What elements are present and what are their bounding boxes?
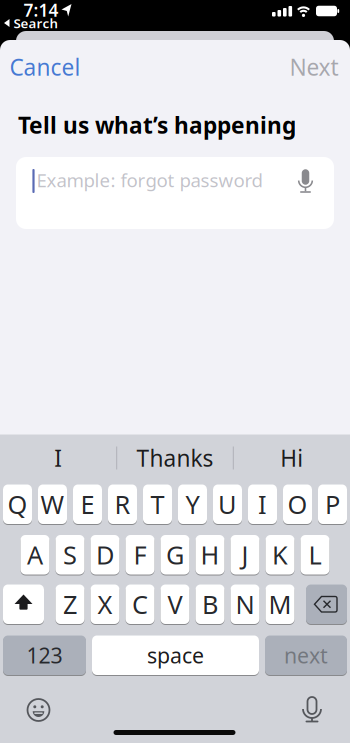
staticText: B xyxy=(202,587,218,621)
staticText: I xyxy=(54,443,62,473)
button[interactable]: Thanks xyxy=(120,438,230,478)
button[interactable]: F xyxy=(125,534,154,575)
staticText: D xyxy=(96,538,114,571)
staticText: O xyxy=(287,487,307,521)
staticText: Search xyxy=(13,14,58,32)
button[interactable]: Q xyxy=(3,484,32,524)
staticText: Z xyxy=(63,587,77,621)
staticText: Next xyxy=(289,52,338,82)
button[interactable]: P xyxy=(318,484,347,524)
button[interactable]: Hi xyxy=(237,438,347,478)
staticText: U xyxy=(218,487,237,521)
button[interactable]: O xyxy=(283,484,312,524)
staticText: Tell us what’s happening xyxy=(18,110,296,140)
staticText: C xyxy=(132,587,148,621)
button[interactable]: Z xyxy=(55,584,84,624)
staticText: E xyxy=(80,487,94,521)
staticText: space xyxy=(147,641,204,669)
button[interactable]: Dictation xyxy=(297,695,327,725)
button[interactable]: Next xyxy=(289,52,338,82)
staticText: Y xyxy=(185,487,199,521)
button[interactable]: Delete xyxy=(306,584,347,624)
button[interactable]: M xyxy=(265,584,294,624)
button[interactable]: N xyxy=(230,584,259,624)
button[interactable]: A xyxy=(20,534,49,575)
button[interactable]: H xyxy=(195,534,224,575)
staticText: H xyxy=(200,538,219,571)
staticText: X xyxy=(97,587,112,621)
button[interactable]: Dictate xyxy=(294,168,316,194)
button[interactable]: S xyxy=(55,534,84,575)
staticText: W xyxy=(40,487,64,521)
button[interactable]: Cancel xyxy=(9,52,80,82)
staticText: I xyxy=(258,487,267,521)
staticText: S xyxy=(63,538,77,571)
staticText: J xyxy=(241,538,248,571)
button[interactable]: Shift xyxy=(3,584,44,624)
staticText: P xyxy=(325,487,340,521)
button[interactable]: C xyxy=(125,584,154,624)
staticText: A xyxy=(27,538,43,571)
staticText: next xyxy=(284,641,328,669)
button[interactable]: V xyxy=(160,584,189,624)
staticText: N xyxy=(235,587,254,621)
button[interactable]: E xyxy=(73,484,102,524)
button[interactable]: Emoji xyxy=(25,697,51,723)
staticText: Thanks xyxy=(136,443,213,473)
staticText: L xyxy=(308,538,321,571)
button[interactable]: J xyxy=(230,534,259,575)
button[interactable]: T xyxy=(143,484,172,524)
button[interactable]: I xyxy=(248,484,277,524)
button[interactable]: 123 xyxy=(3,635,86,675)
button[interactable]: K xyxy=(265,534,294,575)
button[interactable]: next xyxy=(265,635,347,675)
staticText: Q xyxy=(7,487,27,521)
button[interactable]: X xyxy=(90,584,119,624)
button[interactable]: R xyxy=(108,484,137,524)
button[interactable]: B xyxy=(195,584,224,624)
button[interactable]: Y xyxy=(178,484,207,524)
button[interactable]: I xyxy=(3,438,113,478)
staticText: M xyxy=(268,587,291,621)
button[interactable]: space xyxy=(92,635,259,675)
staticText: 7:14 xyxy=(23,0,58,21)
staticText: Cancel xyxy=(9,52,80,82)
staticText: F xyxy=(133,538,146,571)
button[interactable]: W xyxy=(38,484,67,524)
button[interactable]: G xyxy=(160,534,189,575)
staticText: G xyxy=(166,538,184,571)
staticText: T xyxy=(150,487,164,521)
button[interactable]: L xyxy=(300,534,329,575)
staticText: V xyxy=(167,587,182,621)
staticText: 123 xyxy=(26,641,62,669)
staticText: Example: forgot password xyxy=(36,168,262,192)
staticText: Hi xyxy=(280,443,303,473)
staticText: R xyxy=(114,487,130,521)
button[interactable]: Back to Search xyxy=(3,14,58,32)
button[interactable]: D xyxy=(90,534,119,575)
staticText: K xyxy=(272,538,288,571)
button[interactable]: U xyxy=(213,484,242,524)
